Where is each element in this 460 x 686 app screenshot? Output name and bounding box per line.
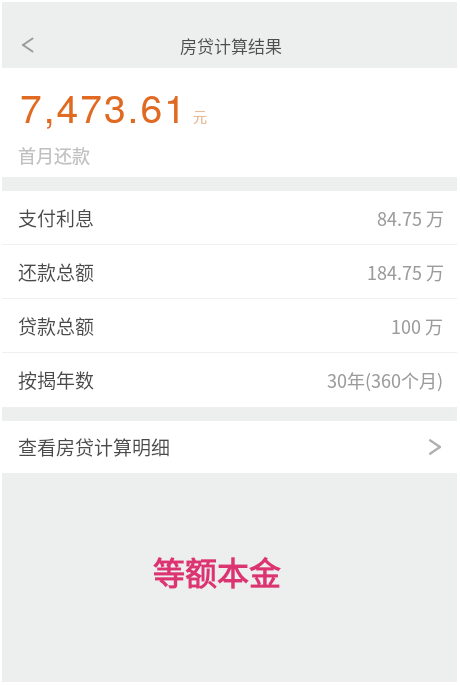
button[interactable]: 支付利息 — [2, 191, 457, 244]
staticText: 84.75 万 — [377, 205, 444, 231]
staticText: 查看房贷计算明细 — [18, 433, 171, 461]
staticText: 首月还款 — [18, 142, 90, 168]
button[interactable]: Back — [3, 22, 51, 68]
staticText: 等额本金 — [153, 548, 282, 594]
staticText: 30年(360个月) — [327, 367, 444, 393]
button[interactable]: 按揭年数 — [2, 353, 457, 407]
staticText: 贷款总额 — [18, 312, 95, 340]
staticText: 元 — [193, 106, 207, 126]
staticText: 100 万 — [391, 313, 444, 339]
staticText: 房贷计算结果 — [180, 33, 282, 58]
staticText: 按揭年数 — [18, 366, 95, 394]
button[interactable]: 查看房贷计算明细 — [2, 421, 457, 473]
staticText: 7,473.61 — [20, 78, 188, 134]
staticText: 支付利息 — [18, 204, 95, 232]
staticText: 184.75 万 — [367, 259, 444, 285]
button[interactable]: 贷款总额 — [2, 299, 457, 352]
staticText: 还款总额 — [18, 258, 95, 286]
button[interactable]: 还款总额 — [2, 245, 457, 298]
